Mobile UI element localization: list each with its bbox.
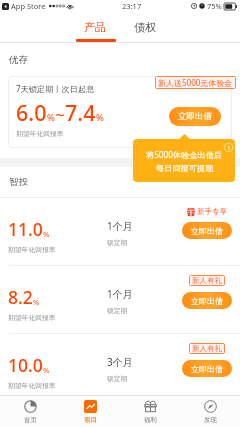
staticText: 锁定期 <box>107 374 128 383</box>
button[interactable]: 福利 <box>120 396 180 427</box>
staticText: 1个月 <box>107 219 133 233</box>
staticText: 10.0 <box>8 353 43 377</box>
staticText: % <box>96 111 104 124</box>
staticText: 立即出借 <box>191 226 223 236</box>
staticText: 每日回报可提现 <box>156 163 214 173</box>
staticText: 7天锁定期丨次日起息 <box>16 83 95 94</box>
staticText: 立即出借 <box>191 296 223 306</box>
staticText: 6.0 <box>16 98 47 127</box>
button[interactable]: 将5000体验金出借后 <box>133 139 235 182</box>
staticText: 锁定期 <box>107 238 128 247</box>
staticText: 11.0 <box>8 217 43 241</box>
staticText: 75% <box>207 1 222 11</box>
staticText: 新人有礼 <box>192 344 222 353</box>
staticText: 产品 <box>84 20 106 34</box>
button[interactable]: 项目 <box>60 396 120 427</box>
staticText: 项目 <box>84 416 97 424</box>
button[interactable]: 7天锁定期丨次日起息 <box>8 76 232 148</box>
staticText: App Store <box>11 1 46 11</box>
staticText: 新人送5000元体验金 <box>158 77 233 88</box>
staticText: 将5000体验金出借后 <box>146 149 223 160</box>
button[interactable]: 10.0 <box>0 334 240 395</box>
staticText: 智投 <box>9 176 28 188</box>
staticText: 期望年化回报率 <box>8 381 56 390</box>
button[interactable]: 立即出借 <box>169 107 221 126</box>
staticText: 3个月 <box>107 355 133 369</box>
staticText: 优存 <box>9 54 28 66</box>
staticText: 期望年化回报率 <box>8 313 56 322</box>
button[interactable]: 立即出借 <box>182 360 232 377</box>
button[interactable]: 立即出借 <box>182 222 232 239</box>
staticText: 发现 <box>204 416 217 424</box>
staticText: 23:17 <box>122 1 142 11</box>
button[interactable]: 债权 <box>122 17 168 37</box>
staticText: 1 <box>227 144 231 152</box>
staticText: % <box>43 365 50 375</box>
staticText: 新人有礼 <box>192 276 222 285</box>
staticText: 7.4 <box>65 98 96 127</box>
staticText: 新手专享 <box>197 207 227 216</box>
staticText: 立即出借 <box>178 111 212 122</box>
button[interactable]: 发现 <box>180 396 240 427</box>
staticText: % <box>43 229 50 239</box>
staticText: 期望年化回报率 <box>8 245 56 254</box>
staticText: % <box>33 297 40 307</box>
button[interactable]: 11.0 <box>0 198 240 265</box>
staticText: 1个月 <box>107 287 133 301</box>
staticText: % <box>47 111 55 124</box>
staticText: 债权 <box>134 20 156 34</box>
staticText: 8.2 <box>8 285 33 309</box>
button[interactable]: 立即出借 <box>182 292 232 309</box>
button[interactable]: 产品 <box>72 17 118 37</box>
staticText: 福利 <box>144 416 157 424</box>
staticText: 期望年化回报率 <box>16 129 64 138</box>
staticText: ~ <box>55 103 65 126</box>
staticText: 锁定期 <box>107 306 128 315</box>
staticText: 立即出借 <box>191 364 223 374</box>
other: Info <box>224 143 233 152</box>
button[interactable]: 8.2 <box>0 266 240 333</box>
button[interactable]: 首页 <box>0 396 60 427</box>
staticText: 首页 <box>24 416 37 424</box>
